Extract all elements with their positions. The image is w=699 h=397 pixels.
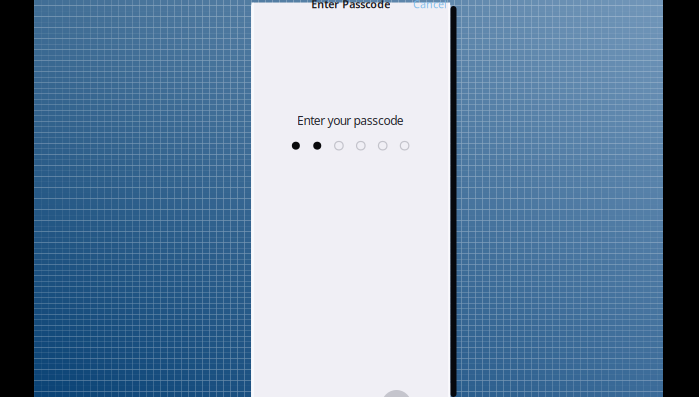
staticText: Enter your passcode [297,112,404,128]
staticText: Cancel [413,0,447,11]
button[interactable]: Keypad [381,390,411,397]
button[interactable]: Cancel [408,0,452,14]
staticText: Enter Passcode [311,0,390,11]
